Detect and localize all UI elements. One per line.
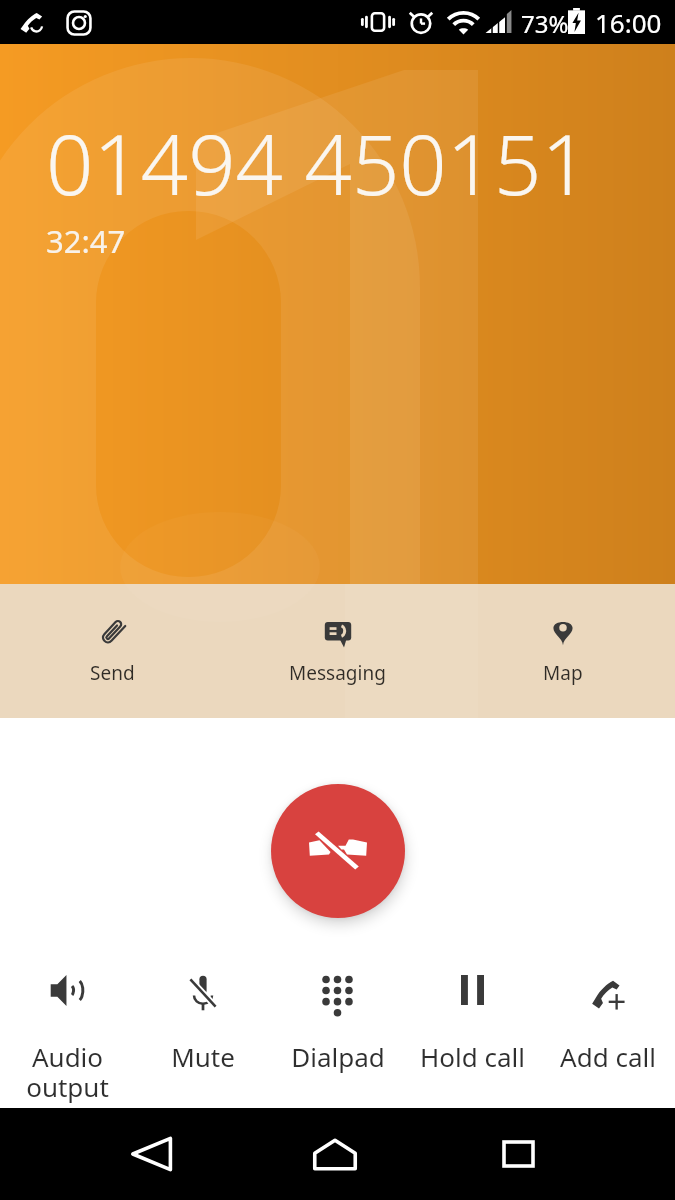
button[interactable]: Send — [0, 584, 225, 718]
button[interactable]: Back — [115, 1117, 189, 1191]
staticText: 16:00 — [595, 5, 662, 40]
staticText: Mute — [171, 1039, 235, 1074]
button[interactable]: Dialpad — [270, 975, 405, 1074]
staticText: Add call — [560, 1039, 656, 1074]
button[interactable]: End call — [271, 784, 405, 918]
staticText: Audio output — [26, 1039, 109, 1105]
staticText: Dialpad — [291, 1039, 385, 1074]
button[interactable]: Home — [298, 1117, 372, 1191]
button[interactable]: Mute — [135, 975, 270, 1074]
staticText: 73% — [521, 7, 569, 40]
staticText: Messaging — [289, 660, 386, 685]
staticText: Send — [90, 660, 135, 685]
button[interactable]: Messaging — [225, 584, 450, 718]
staticText: Hold call — [420, 1039, 525, 1074]
button[interactable]: Audio output — [0, 975, 135, 1105]
button[interactable]: Hold call — [405, 975, 540, 1074]
staticText: Map — [543, 660, 583, 685]
button[interactable]: Add call — [540, 975, 675, 1074]
staticText: 01494 450151 — [46, 106, 589, 219]
button[interactable]: Recents — [481, 1117, 555, 1191]
staticText: 32:47 — [46, 220, 126, 262]
button[interactable]: Map — [450, 584, 675, 718]
